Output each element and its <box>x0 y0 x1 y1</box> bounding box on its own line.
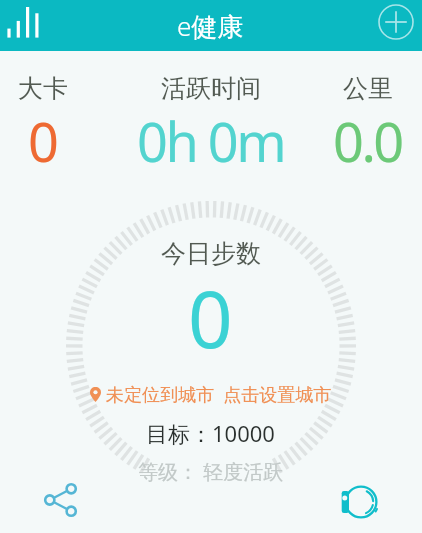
button[interactable]: Add <box>371 0 422 51</box>
staticText: 活跃时间 <box>161 73 261 104</box>
staticText: 0.0 <box>333 104 402 178</box>
button[interactable]: 大卡 <box>0 66 86 170</box>
staticText: 今日步数 <box>161 238 261 269</box>
button[interactable]: Connect watch <box>337 479 381 523</box>
staticText: 等级： 轻度活跃 <box>138 458 284 485</box>
staticText: 大卡 <box>18 73 68 104</box>
button[interactable]: 活跃时间 <box>126 66 296 170</box>
staticText: e健康 <box>177 8 244 44</box>
staticText: 0 <box>188 265 233 371</box>
button[interactable]: Share <box>39 478 83 522</box>
button[interactable]: Statistics <box>0 0 52 51</box>
staticText: 未定位到城市 点击设置城市 <box>106 382 332 407</box>
staticText: 公里 <box>343 73 393 104</box>
staticText: 目标：10000 <box>146 418 275 448</box>
button[interactable]: 公里 <box>314 66 422 170</box>
staticText: 0 <box>28 104 57 178</box>
staticText: 0h 0m <box>137 104 285 178</box>
button[interactable]: 未定位到城市 点击设置城市 <box>90 380 332 409</box>
